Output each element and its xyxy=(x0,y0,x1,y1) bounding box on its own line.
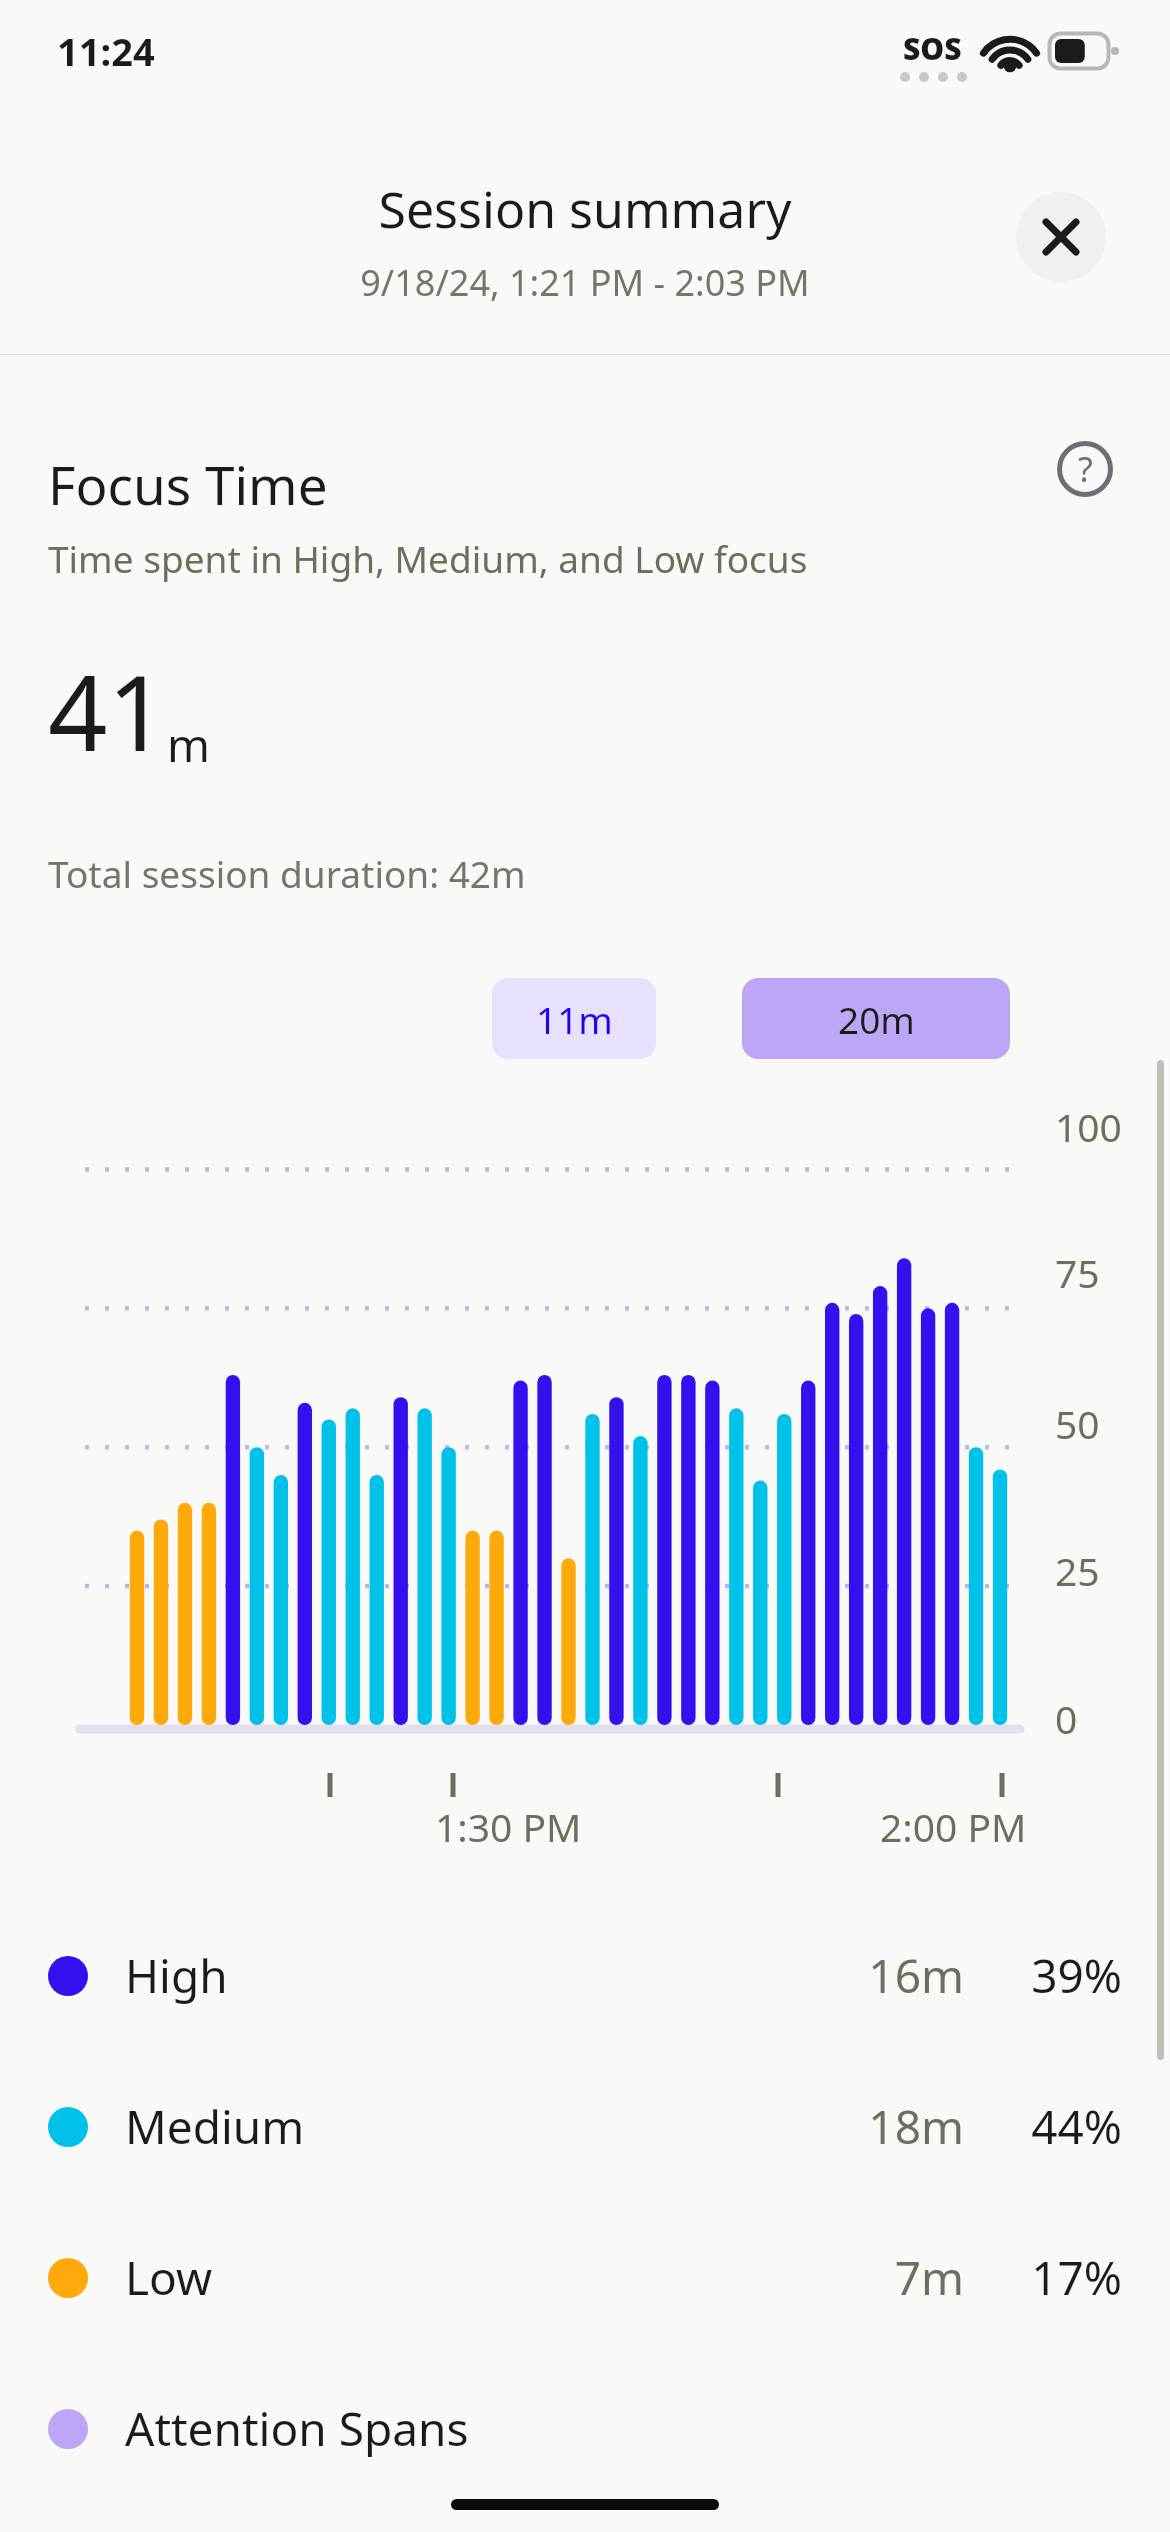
staticText: 18m xyxy=(784,2095,964,2158)
staticText: High xyxy=(125,1944,228,2007)
staticText: 16m xyxy=(784,1944,964,2007)
button[interactable]: Close xyxy=(1016,192,1106,282)
button[interactable]: Help xyxy=(1043,427,1127,511)
staticText: 44% xyxy=(992,2095,1122,2158)
staticText: 20m xyxy=(838,994,915,1044)
staticText: 39% xyxy=(992,1944,1122,2007)
staticText: Total session duration: 42m xyxy=(48,848,526,898)
staticText: Time spent in High, Medium, and Low focu… xyxy=(48,533,808,583)
staticText: m xyxy=(167,713,211,776)
staticText: 2:00 PM xyxy=(880,1800,1027,1853)
button[interactable]: Medium xyxy=(0,2051,1170,2202)
staticText: 11m xyxy=(536,994,613,1044)
staticText: Session summary xyxy=(0,175,1170,243)
staticText: 9/18/24, 1:21 PM - 2:03 PM xyxy=(0,258,1170,307)
staticText: 25 xyxy=(1055,1544,1100,1597)
staticText: 100 xyxy=(1055,1100,1122,1153)
button[interactable]: High xyxy=(0,1900,1170,2051)
button[interactable]: 11m xyxy=(492,978,656,1059)
staticText: Focus Time xyxy=(48,448,328,520)
staticText: 7m xyxy=(784,2246,964,2309)
staticText: 1:30 PM xyxy=(435,1800,582,1853)
staticText: Medium xyxy=(125,2095,305,2158)
staticText: 50 xyxy=(1055,1397,1100,1450)
staticText: 0 xyxy=(1055,1692,1078,1745)
button[interactable]: 20m xyxy=(742,978,1010,1059)
button[interactable]: Attention Spans xyxy=(0,2353,1170,2504)
staticText: SOS xyxy=(903,28,962,69)
staticText: Low xyxy=(125,2246,213,2309)
staticText: 11:24 xyxy=(57,25,155,77)
staticText: 75 xyxy=(1055,1246,1100,1299)
staticText: ? xyxy=(1078,446,1093,492)
staticText: Attention Spans xyxy=(125,2397,469,2460)
staticText: 17% xyxy=(992,2246,1122,2309)
button[interactable]: Low xyxy=(0,2202,1170,2353)
staticText: 41 xyxy=(48,640,167,782)
